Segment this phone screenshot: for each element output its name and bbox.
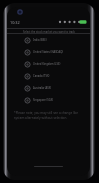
staticText: Singapore (SGX): [33, 98, 54, 102]
staticText: Australia (ASX): [33, 86, 52, 90]
button[interactable]: United States (NASDAQ): [7, 46, 90, 58]
staticText: 10:32: [10, 20, 20, 25]
staticText: India (BSE): [33, 38, 47, 42]
button[interactable]: India (BSE): [7, 34, 90, 46]
staticText: United States (NASDAQ): [33, 50, 64, 54]
button[interactable]: United Kingdom (LSE): [7, 58, 90, 70]
staticText: United Kingdom (LSE): [33, 62, 61, 66]
button[interactable]: Australia (ASX): [7, 82, 90, 94]
staticText: *Please note, you may still see a change…: [14, 111, 84, 120]
button[interactable]: Singapore (SGX): [7, 94, 90, 106]
staticText: Canada (TSX): [33, 74, 50, 78]
staticText: Select the stock market you want to trac…: [23, 30, 75, 34]
button[interactable]: Canada (TSX): [7, 70, 90, 82]
